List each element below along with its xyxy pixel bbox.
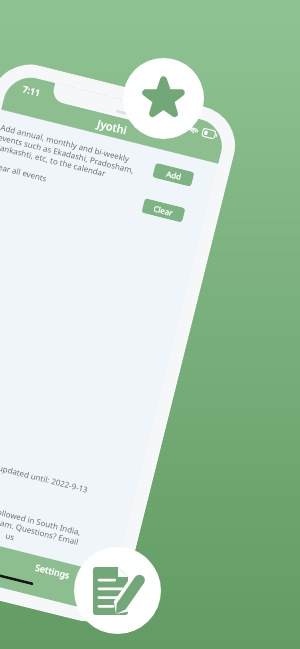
staticText: Add annual, monthly and bi-weekly events… (0, 121, 138, 185)
staticText: Calendar as followed in South India, Ker… (0, 483, 125, 569)
staticText: Add (165, 168, 182, 182)
staticText: Calendar updated until: 2022-9-13 (0, 441, 136, 506)
button[interactable]: Clear (141, 198, 186, 223)
staticText: Clear (152, 203, 174, 218)
staticText: Settings (34, 561, 72, 581)
button[interactable]: Calendar (0, 537, 1, 568)
staticText: Jyothi (96, 116, 129, 137)
staticText: Calendar (0, 537, 1, 568)
button[interactable]: Edit notes (74, 547, 161, 634)
button[interactable]: Add (152, 163, 195, 187)
button[interactable]: Settings (32, 556, 74, 586)
staticText: Clear all events (0, 159, 129, 204)
button[interactable]: Featured (123, 58, 204, 139)
staticText: 7:11 (21, 82, 42, 98)
